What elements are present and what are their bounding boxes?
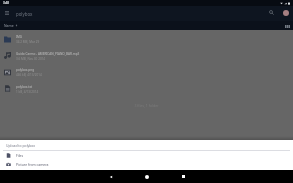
button[interactable]: Guido Carmo - AMERICAN_PIANO_BAR.mp3 [0, 47, 293, 63]
staticText: Picture from camera [16, 162, 49, 167]
button[interactable]: Switch to grid view [283, 22, 291, 30]
staticText: 3.6 MB, Nov 30 2014 [16, 57, 46, 61]
staticText: polybox.png [16, 68, 35, 72]
staticText: 34.2 MB, Mar 29 [16, 40, 40, 44]
staticText: IMG [16, 35, 23, 39]
staticText: polybox [16, 11, 33, 17]
button[interactable]: IMG [0, 30, 293, 47]
button[interactable]: Name [0, 23, 21, 28]
button[interactable]: polybox.txt [0, 80, 293, 96]
staticText: polybox.txt [16, 85, 33, 89]
staticText: Guido Carmo - AMERICAN_PIANO_BAR.mp3 [16, 52, 80, 56]
button[interactable]: Open navigation drawer [1, 7, 13, 19]
staticText: 446 kB, 4/13/2014 [16, 73, 42, 77]
button[interactable]: polybox.png [0, 63, 293, 80]
button[interactable]: Recent apps [165, 170, 201, 183]
button[interactable]: Back [93, 170, 129, 183]
button[interactable]: Home [129, 170, 165, 183]
button[interactable]: Search [265, 6, 278, 19]
button[interactable]: Picture from camera [0, 160, 293, 169]
staticText: Files [16, 153, 24, 158]
button[interactable]: Account [278, 5, 293, 20]
staticText: Upload to polybox [6, 143, 36, 148]
staticText: 1 kB, 4/13/2014 [16, 90, 39, 94]
staticText: 3:48 [3, 1, 9, 5]
staticText: Name [4, 23, 14, 28]
button[interactable]: Files [0, 151, 293, 160]
